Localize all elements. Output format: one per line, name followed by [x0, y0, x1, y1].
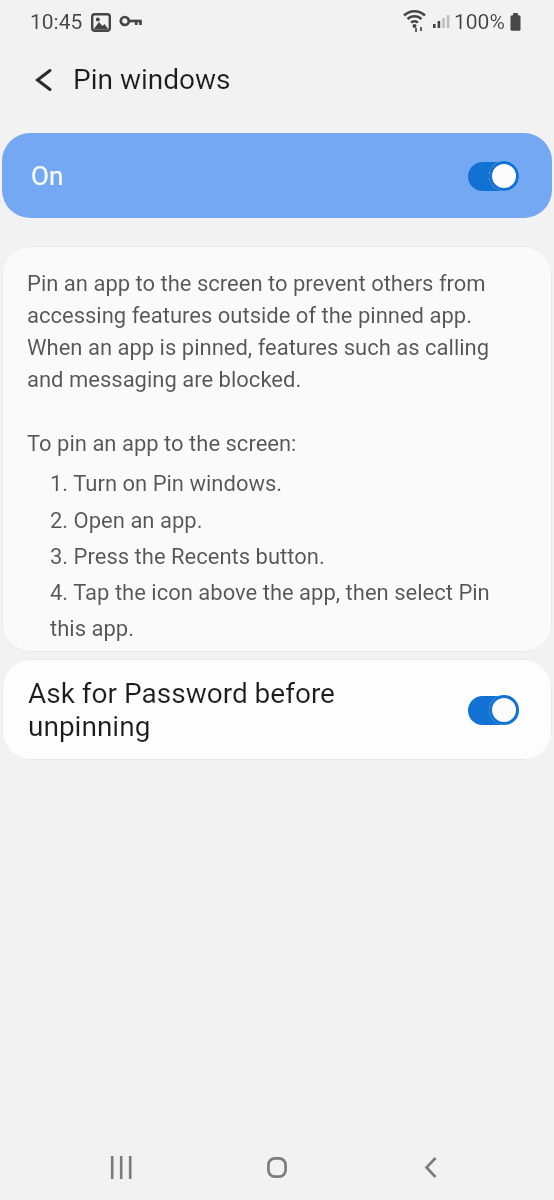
- staticText: Ask for Password before unpinning: [28, 677, 335, 743]
- staticText: To pin an app to the screen:: [27, 431, 297, 457]
- staticText: Pin windows: [73, 63, 231, 96]
- staticText: 10:45: [30, 10, 83, 35]
- staticText: 1. Turn on Pin windows. 2. Open an app. …: [50, 471, 490, 641]
- staticText: 100%: [454, 10, 505, 35]
- button[interactable]: [36, 70, 52, 90]
- button[interactable]: On: [2, 133, 552, 218]
- button[interactable]: [253, 1143, 301, 1191]
- staticText: On: [31, 161, 64, 191]
- button[interactable]: Ask for Password before unpinning: [2, 659, 552, 760]
- button[interactable]: [407, 1143, 455, 1191]
- staticText: Pin an app to the screen to prevent othe…: [27, 271, 490, 393]
- button[interactable]: [97, 1143, 145, 1191]
